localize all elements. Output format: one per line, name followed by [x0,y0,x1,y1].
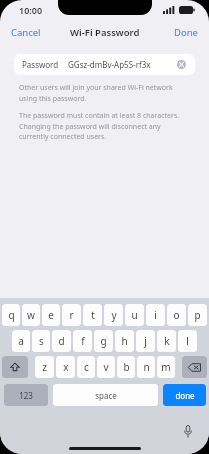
staticText: m [161,360,171,374]
staticText: v [103,360,109,374]
staticText: e [48,308,54,322]
staticText: Password [22,59,59,70]
button[interactable]: i [146,304,165,326]
staticText: s [39,334,44,348]
staticText: w [27,308,35,322]
button[interactable]: Dictation [181,424,195,438]
button[interactable]: z [35,356,54,378]
staticText: a [18,334,24,348]
staticText: The password must contain at least 8 cha… [19,111,190,141]
button[interactable]: n [137,356,155,378]
staticText: o [173,308,180,322]
staticText: x [63,360,69,374]
button[interactable]: m [157,356,175,378]
staticText: Wi-Fi Password [70,26,140,39]
staticText: y [111,308,117,322]
staticText: z [42,360,47,374]
button[interactable]: a [12,330,30,352]
staticText: f [81,334,85,348]
button[interactable]: p [188,304,207,326]
staticText: c [84,360,89,374]
staticText: done [175,390,195,401]
staticText: r [69,308,74,322]
staticText: p [194,308,201,322]
staticText: u [131,308,138,322]
button[interactable]: o [167,304,186,326]
button[interactable]: 123 [4,384,48,406]
staticText: t [91,308,95,322]
staticText: GGsz-dmBv-Ap5S-rf3x [68,59,151,70]
button[interactable]: y [104,304,123,326]
button[interactable]: q [2,304,20,326]
staticText: Cancel [11,26,41,39]
button[interactable]: Clear text [176,59,187,70]
staticText: space [95,390,117,401]
button[interactable]: w [22,304,40,326]
staticText: b [123,360,130,374]
button[interactable]: d [52,330,71,352]
button[interactable]: k [157,330,176,352]
button[interactable]: Shift [2,356,28,378]
staticText: k [164,334,170,348]
button[interactable]: c [77,356,95,378]
button[interactable]: h [115,330,134,352]
staticText: j [144,334,147,348]
button[interactable]: Done [163,22,209,43]
staticText: q [8,308,15,322]
button[interactable]: v [97,356,115,378]
button[interactable]: done [163,384,206,406]
button[interactable]: r [62,304,81,326]
staticText: g [100,334,107,348]
staticText: 10:00 [19,4,43,16]
staticText: h [121,334,128,348]
button[interactable]: s [32,330,50,352]
staticText: l [186,334,189,348]
button[interactable]: space [53,384,158,406]
staticText: Other users will join your shared Wi-Fi … [19,83,190,103]
staticText: d [58,334,65,348]
button[interactable]: x [56,356,75,378]
staticText: i [154,308,157,322]
button[interactable]: Cancel [0,22,52,43]
button[interactable]: Password [14,54,195,75]
staticText: 123 [19,390,33,401]
button[interactable]: t [83,304,102,326]
staticText: Done [174,26,198,39]
button[interactable]: l [178,330,197,352]
button[interactable]: u [125,304,144,326]
button[interactable]: e [42,304,60,326]
button[interactable]: j [136,330,155,352]
button[interactable]: Backspace [182,356,207,378]
button[interactable]: f [73,330,92,352]
button[interactable]: b [117,356,135,378]
staticText: n [143,360,150,374]
button[interactable]: g [94,330,113,352]
